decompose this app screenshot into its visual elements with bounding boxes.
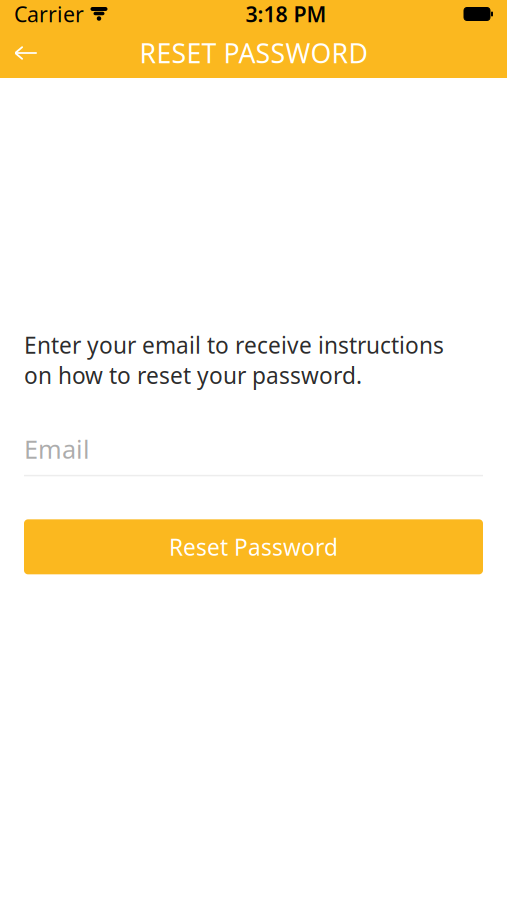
staticText: Carrier <box>14 0 84 28</box>
staticText: RESET PASSWORD <box>139 35 367 71</box>
staticText: 3:18 PM <box>245 0 326 28</box>
staticText: Email <box>24 432 90 466</box>
staticText: Enter your email to receive instructions… <box>24 330 444 390</box>
staticText: Reset Password <box>169 532 338 562</box>
button[interactable]: Reset Password <box>24 519 483 574</box>
button[interactable]: Back <box>0 28 52 78</box>
